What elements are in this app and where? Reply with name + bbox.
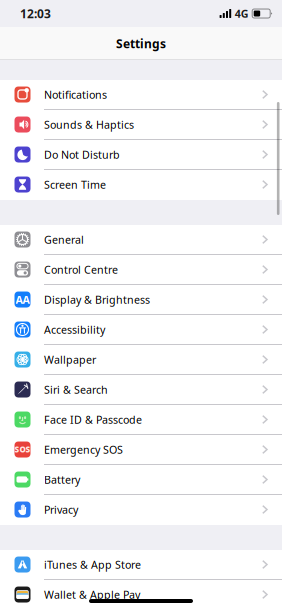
staticText: Wallet & Apple Pay bbox=[44, 587, 140, 602]
button[interactable]: Screen Time bbox=[0, 170, 282, 200]
staticText: Display & Brightness bbox=[44, 292, 150, 307]
staticText: Screen Time bbox=[44, 177, 106, 192]
staticText: Sounds & Haptics bbox=[44, 117, 134, 132]
button[interactable]: Battery bbox=[0, 465, 282, 495]
button[interactable]: Accessibility bbox=[0, 315, 282, 345]
staticText: Battery bbox=[44, 472, 80, 487]
button[interactable]: AA bbox=[0, 285, 282, 315]
button[interactable]: Sounds & Haptics bbox=[0, 110, 282, 140]
staticText: Control Centre bbox=[44, 262, 118, 277]
button[interactable]: Wallpaper bbox=[0, 345, 282, 375]
staticText: 4G bbox=[235, 6, 249, 21]
staticText: Emergency SOS bbox=[44, 442, 123, 457]
staticText: Privacy bbox=[44, 502, 78, 517]
staticText: Accessibility bbox=[44, 322, 105, 337]
button[interactable]: Siri & Search bbox=[0, 375, 282, 405]
staticText: General bbox=[44, 232, 84, 247]
staticText: SOS bbox=[14, 444, 30, 455]
button[interactable]: Do Not Disturb bbox=[0, 140, 282, 170]
staticText: Notifications bbox=[44, 87, 107, 102]
button[interactable]: iTunes & App Store bbox=[0, 550, 282, 580]
button[interactable]: Control Centre bbox=[0, 255, 282, 285]
button[interactable]: Face ID & Passcode bbox=[0, 405, 282, 435]
staticText: Do Not Disturb bbox=[44, 147, 120, 162]
staticText: Wallpaper bbox=[44, 352, 96, 367]
staticText: Settings bbox=[116, 35, 166, 51]
button[interactable]: Wallet & Apple Pay bbox=[0, 580, 282, 610]
staticText: iTunes & App Store bbox=[44, 557, 141, 572]
button[interactable]: SOS bbox=[0, 435, 282, 465]
staticText: AA bbox=[15, 292, 29, 307]
staticText: Siri & Search bbox=[44, 382, 108, 397]
button[interactable]: Notifications bbox=[0, 80, 282, 110]
staticText: Face ID & Passcode bbox=[44, 412, 142, 427]
staticText: 12:03 bbox=[20, 5, 51, 21]
button[interactable]: General bbox=[0, 225, 282, 255]
button[interactable]: Privacy bbox=[0, 495, 282, 525]
